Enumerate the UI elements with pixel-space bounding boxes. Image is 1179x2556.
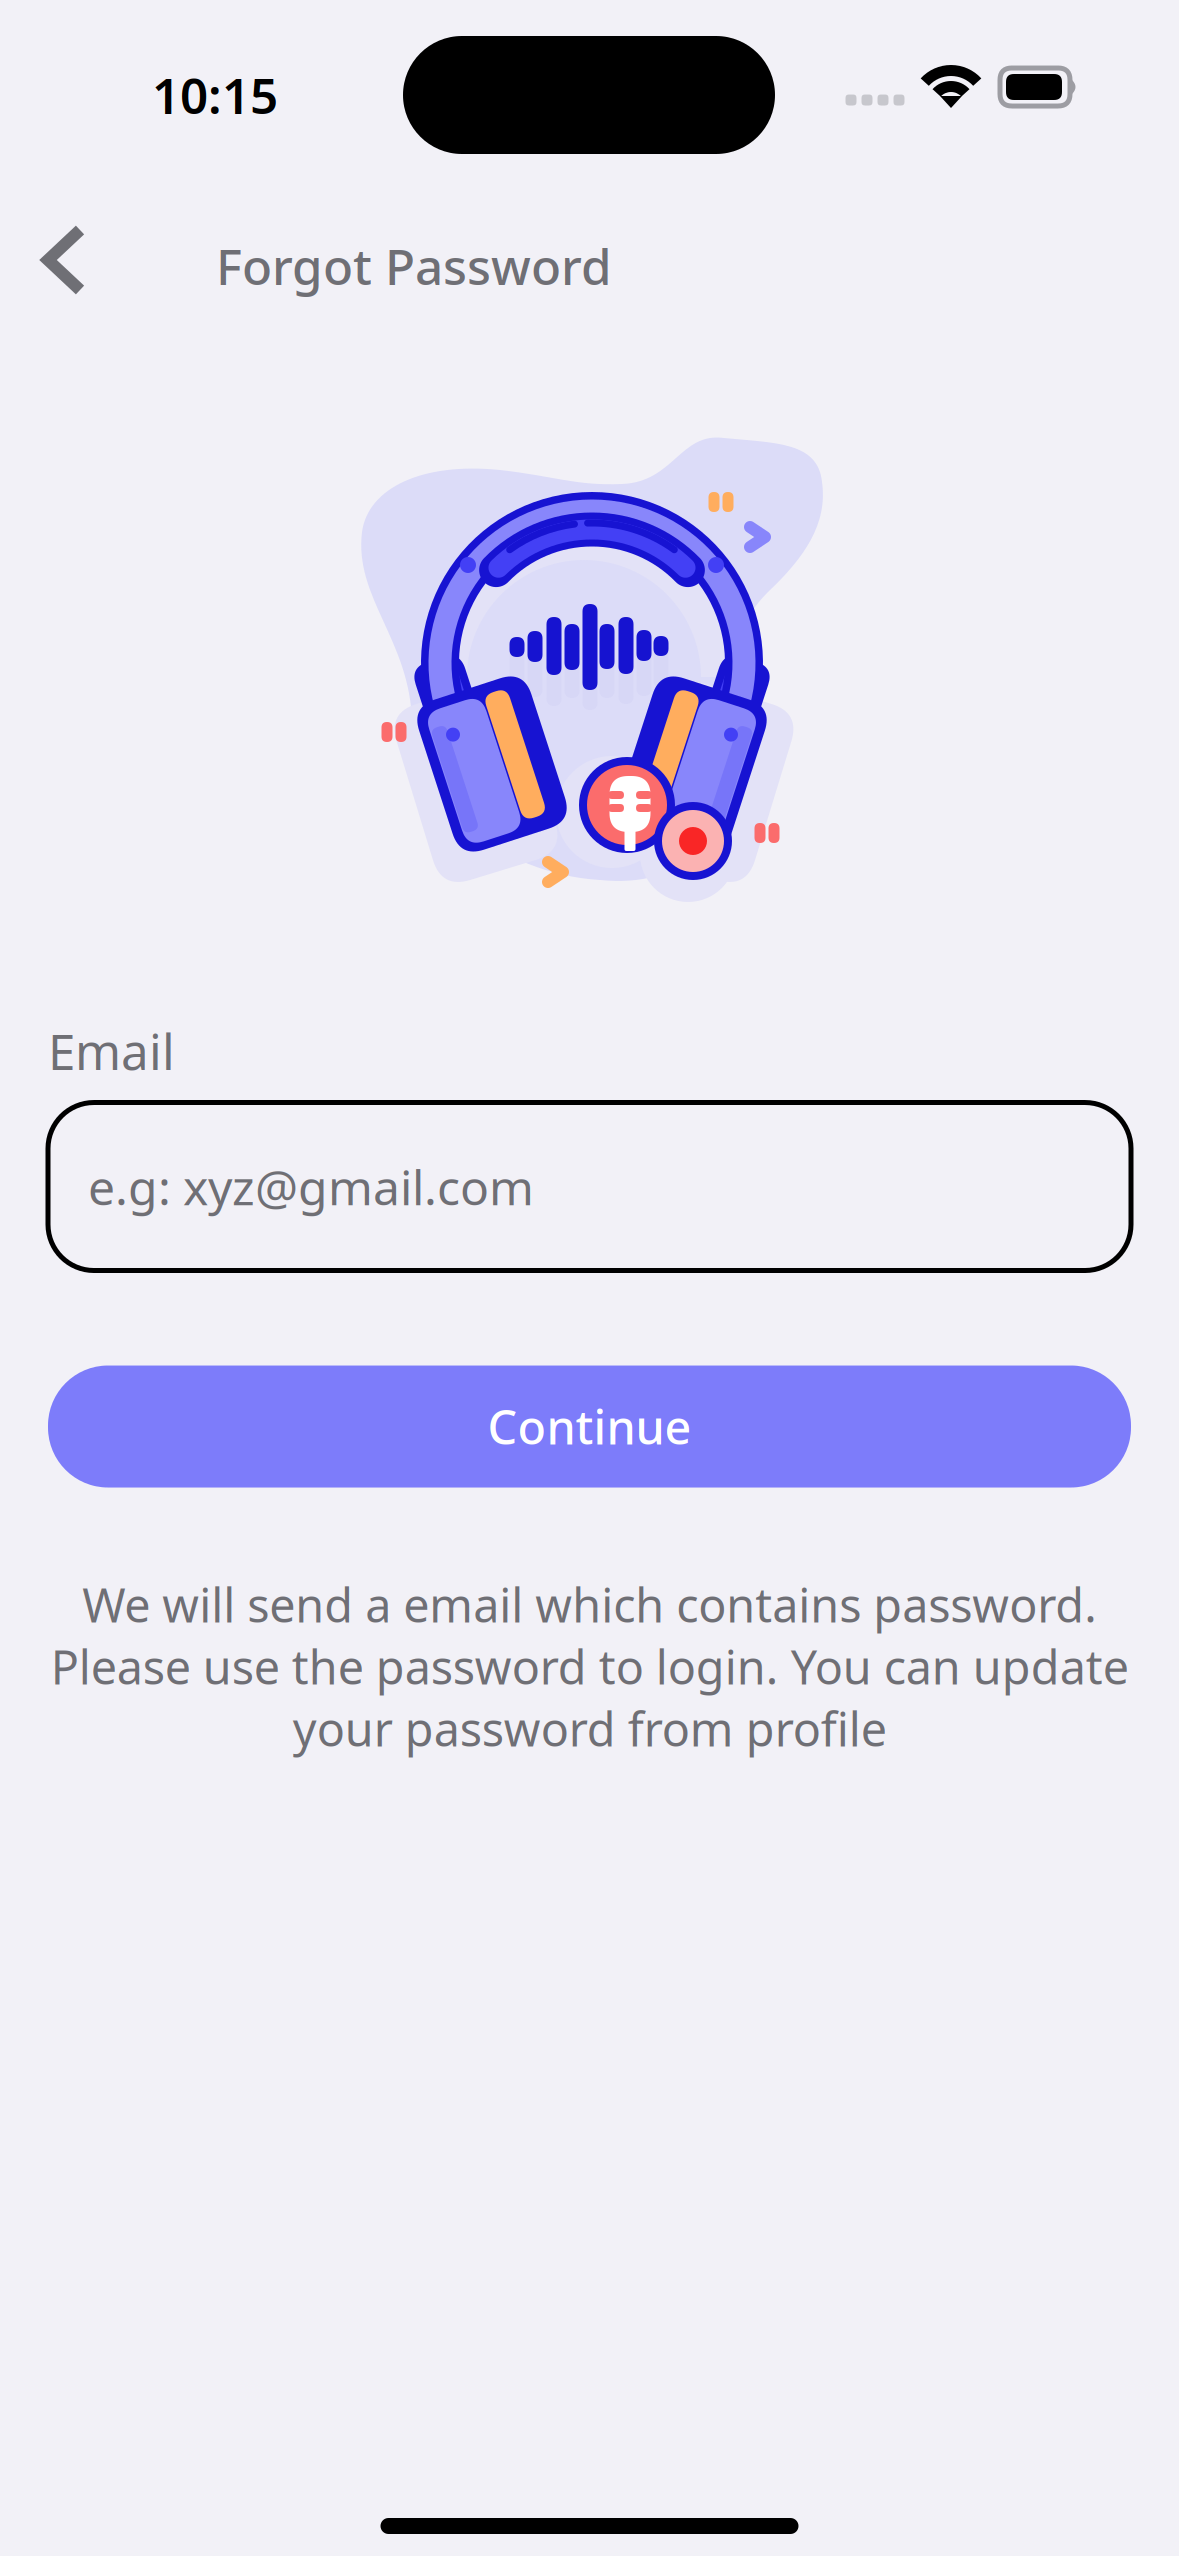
- button[interactable]: Back: [0, 172, 1179, 340]
- staticText: Continue: [487, 1395, 691, 1457]
- staticText: e.g: xyz@gmail.com: [88, 1155, 534, 1218]
- staticText: We will send a email which contains pass…: [50, 1573, 1128, 1759]
- staticText: Forgot Password: [216, 233, 612, 298]
- button[interactable]: Continue: [48, 1365, 1131, 1487]
- staticText: 10:15: [152, 62, 278, 127]
- staticText: Email: [48, 1018, 175, 1083]
